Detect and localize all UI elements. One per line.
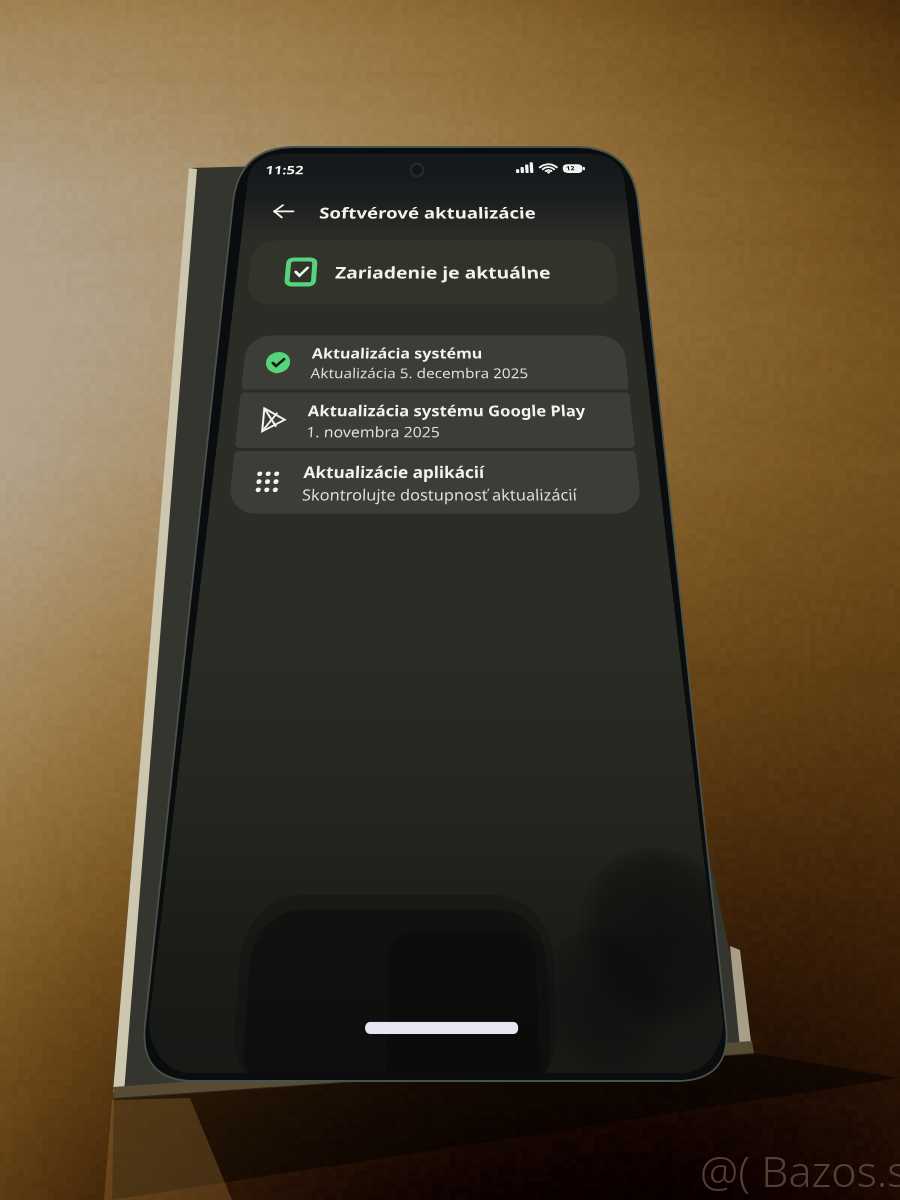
staticText: Aktualizácie aplikácií xyxy=(303,461,485,483)
staticText: 11:52 xyxy=(265,162,305,178)
staticText: 12 xyxy=(566,164,575,172)
button[interactable]: Aktualizácie aplikácií xyxy=(228,451,642,514)
button[interactable]: Aktualizácia systému Google Play xyxy=(235,392,635,448)
staticText: Aktualizácia 5. decembra 2025 xyxy=(310,363,529,381)
staticText: Aktualizácia systému Google Play xyxy=(307,400,587,421)
button[interactable]: Back xyxy=(263,196,303,226)
staticText: Skontrolujte dostupnosť aktualizácií xyxy=(301,484,578,504)
button[interactable]: Aktualizácia systému xyxy=(241,335,629,390)
staticText: Softvérové aktualizácie xyxy=(318,202,536,223)
staticText: Aktualizácia systému xyxy=(311,343,483,362)
staticText: Zariadenie je aktuálne xyxy=(334,261,552,283)
staticText: @( Bazos.sk xyxy=(700,1141,900,1200)
staticText: 1. novembra 2025 xyxy=(306,421,441,441)
button[interactable]: Zariadenie je aktuálne xyxy=(246,240,620,305)
